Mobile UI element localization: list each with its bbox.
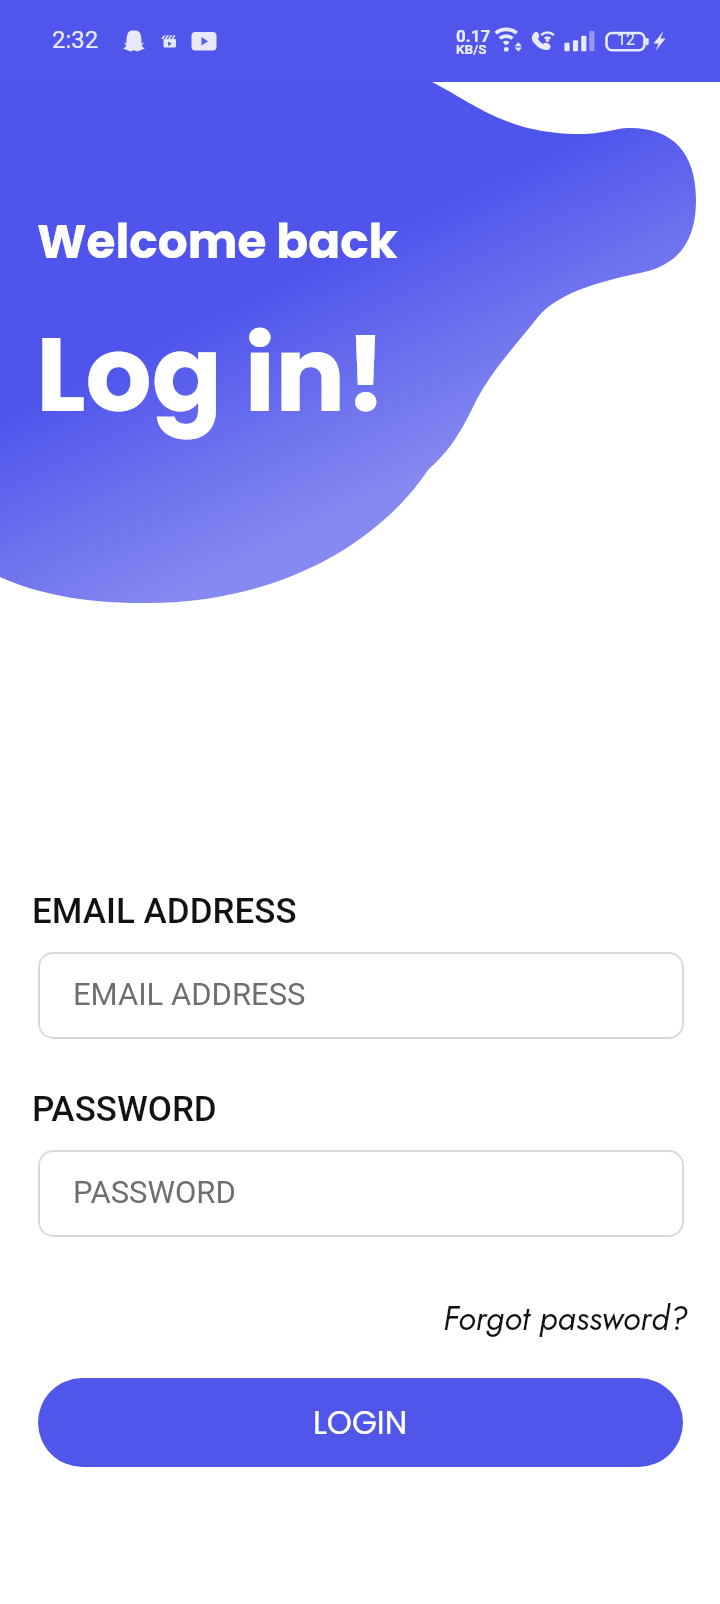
staticText: Forgot password?	[443, 1295, 688, 1343]
button[interactable]: EMAIL ADDRESS	[38, 952, 684, 1039]
staticText: PASSWORD	[32, 1089, 217, 1130]
staticText: Log in!	[36, 302, 387, 448]
staticText: 2:32	[52, 26, 99, 54]
staticText: 0.17	[456, 26, 491, 46]
staticText: LOGIN	[313, 1400, 408, 1445]
staticText: EMAIL ADDRESS	[32, 891, 297, 932]
button[interactable]: PASSWORD	[38, 1150, 684, 1237]
staticText: 12	[617, 30, 635, 49]
button[interactable]: Forgot password?	[443, 1295, 688, 1343]
staticText: KB/S	[456, 41, 487, 57]
staticText: EMAIL ADDRESS	[73, 976, 306, 1012]
staticText: Welcome back	[37, 209, 398, 275]
button[interactable]: LOGIN	[38, 1378, 683, 1467]
staticText: PASSWORD	[73, 1174, 236, 1210]
